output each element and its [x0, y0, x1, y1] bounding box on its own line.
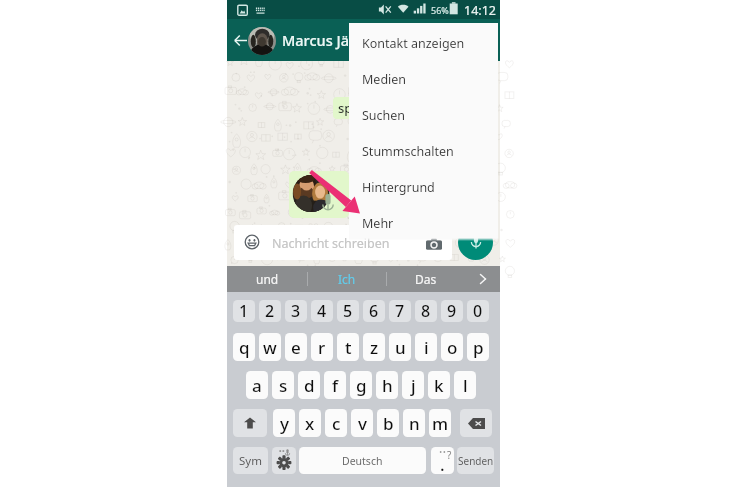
button[interactable]: r — [311, 333, 333, 361]
button[interactable]: ? — [431, 447, 454, 474]
button[interactable]: q — [233, 333, 255, 361]
button[interactable]: 2 — [259, 300, 281, 322]
staticText: p — [473, 336, 484, 359]
staticText: 6 — [369, 300, 379, 322]
staticText: g — [356, 374, 367, 397]
staticText: q — [239, 336, 250, 359]
button[interactable]: h — [376, 371, 398, 399]
button[interactable]: d — [298, 371, 320, 399]
button[interactable]: y — [273, 409, 295, 437]
button[interactable]: w — [259, 333, 281, 361]
button[interactable]: a — [246, 371, 268, 399]
staticText: 3 — [291, 300, 301, 322]
button[interactable]: k — [428, 371, 450, 399]
staticText: b — [383, 412, 394, 435]
staticText: a — [252, 374, 262, 397]
button[interactable] — [289, 171, 349, 218]
button[interactable]: z — [363, 333, 385, 361]
staticText: 14:12 — [464, 2, 496, 19]
button[interactable]: Camera — [426, 237, 442, 250]
staticText: u — [395, 336, 406, 359]
button[interactable]: f — [324, 371, 346, 399]
button[interactable]: Mehr — [349, 205, 498, 241]
staticText: Stummschalten — [362, 143, 454, 160]
button[interactable]: Shift — [233, 409, 267, 437]
staticText: Medien — [362, 71, 407, 88]
staticText: f — [332, 374, 339, 397]
button[interactable]: n — [403, 409, 425, 437]
staticText: 8 — [421, 300, 431, 322]
button[interactable]: Suchen — [349, 97, 498, 133]
staticText: 4 — [317, 300, 327, 322]
button[interactable]: More suggestions — [465, 266, 500, 292]
button[interactable]: und — [227, 266, 307, 292]
staticText: Nachricht schreiben — [272, 235, 390, 252]
staticText: j — [411, 374, 416, 397]
staticText: 5 — [343, 300, 353, 322]
button[interactable]: Senden — [457, 447, 494, 474]
button[interactable]: b — [377, 409, 399, 437]
button[interactable]: 0 — [467, 300, 489, 322]
button[interactable]: Deutsch — [299, 447, 426, 474]
button[interactable]: 6 — [363, 300, 385, 322]
button[interactable]: t — [337, 333, 359, 361]
button[interactable]: 8 — [415, 300, 437, 322]
staticText: l — [463, 374, 468, 397]
staticText: Mehr — [362, 215, 394, 232]
staticText: e — [291, 336, 301, 359]
staticText: 56% — [431, 4, 449, 16]
button[interactable]: 4 — [311, 300, 333, 322]
button[interactable]: Kontakt anzeigen — [349, 25, 498, 61]
button[interactable]: Back — [229, 21, 251, 59]
button[interactable]: sp — [333, 97, 373, 119]
button[interactable]: Backspace — [460, 409, 492, 437]
button[interactable]: Medien — [349, 61, 498, 97]
staticText: k — [434, 374, 444, 397]
button[interactable]: p — [467, 333, 489, 361]
button[interactable]: c — [325, 409, 347, 437]
button[interactable]: i — [415, 333, 437, 361]
staticText: m — [432, 412, 449, 435]
button[interactable]: s — [272, 371, 294, 399]
button[interactable]: l — [454, 371, 476, 399]
staticText: w — [263, 336, 277, 359]
button[interactable]: 1 — [233, 300, 255, 322]
button[interactable]: Ich — [307, 266, 386, 292]
button[interactable]: o — [441, 333, 463, 361]
button[interactable]: j — [402, 371, 424, 399]
button[interactable]: Emoji — [244, 234, 260, 250]
button[interactable]: Emoji — [234, 225, 452, 260]
button[interactable]: Das — [386, 266, 465, 292]
staticText: 0 — [473, 300, 483, 322]
button[interactable]: Record voice message — [458, 225, 493, 260]
button[interactable]: m — [429, 409, 451, 437]
button[interactable]: v — [351, 409, 373, 437]
button[interactable]: 3 — [285, 300, 307, 322]
staticText: 9 — [447, 300, 457, 322]
staticText: Senden — [458, 454, 494, 468]
button[interactable]: g — [350, 371, 372, 399]
staticText: o — [447, 336, 458, 359]
staticText: i — [424, 336, 429, 359]
button[interactable]: Keyboard settings — [272, 447, 296, 474]
staticText: 2 — [265, 300, 275, 322]
staticText: s — [279, 374, 288, 397]
button[interactable]: Stummschalten — [349, 133, 498, 169]
staticText: . — [440, 453, 445, 474]
staticText: t — [345, 336, 352, 359]
button[interactable]: u — [389, 333, 411, 361]
button[interactable]: Sym — [233, 447, 268, 474]
button[interactable]: Hintergrund — [349, 169, 498, 205]
staticText: Ich — [338, 271, 356, 287]
button[interactable]: 9 — [441, 300, 463, 322]
staticText: Das — [415, 271, 437, 287]
button[interactable]: Contact photo — [248, 27, 276, 55]
staticText: 1 — [239, 300, 249, 322]
button[interactable]: 7 — [389, 300, 411, 322]
button[interactable]: x — [299, 409, 321, 437]
staticText: x — [305, 412, 315, 435]
button[interactable]: 5 — [337, 300, 359, 322]
staticText: n — [409, 412, 420, 435]
button[interactable]: e — [285, 333, 307, 361]
staticText: Suchen — [362, 107, 406, 124]
